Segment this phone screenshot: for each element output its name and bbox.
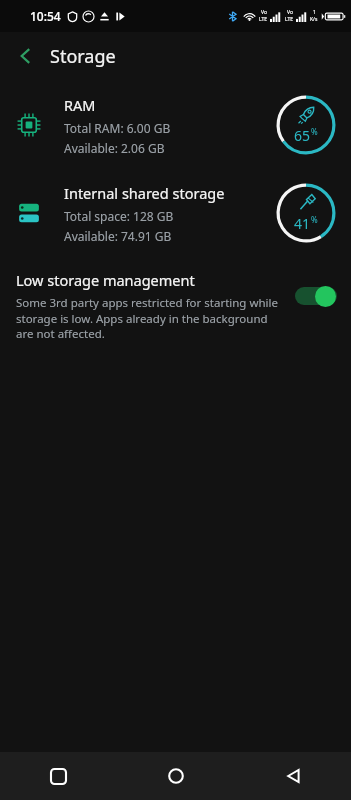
staticText: 10:54 [30, 8, 61, 24]
button[interactable]: Clean up 65 percent used [275, 94, 337, 156]
staticText: Available: 74.91 GB [64, 228, 172, 244]
button[interactable]: Back [8, 38, 44, 74]
staticText: 1 [313, 9, 316, 16]
staticText: RAM [64, 95, 96, 115]
staticText: LTE [285, 16, 294, 23]
staticText: Storage [50, 44, 116, 69]
staticText: Total RAM: 6.00 GB [64, 120, 171, 136]
staticText: 65 [294, 126, 311, 145]
staticText: Some 3rd party apps restricted for start… [16, 295, 283, 341]
button[interactable]: Recents [0, 752, 117, 800]
staticText: % [311, 214, 318, 225]
staticText: LTE [259, 16, 268, 23]
button[interactable]: Home [117, 752, 234, 800]
staticText: Low storage management [16, 270, 195, 290]
staticText: Vo [287, 9, 293, 16]
staticText: Vo [261, 9, 267, 16]
staticText: Available: 2.06 GB [64, 140, 165, 156]
button[interactable]: Low storage management [0, 266, 351, 345]
button[interactable]: Low storage management toggle [295, 284, 337, 308]
staticText: Internal shared storage [64, 183, 225, 203]
staticText: Total space: 128 GB [64, 208, 174, 224]
staticText: K/s [310, 16, 318, 23]
button[interactable]: Clean up 41 percent used [275, 182, 337, 244]
button[interactable]: RAM [0, 90, 351, 160]
button[interactable]: Internal shared storage [0, 178, 351, 248]
staticText: 41 [294, 214, 311, 233]
staticText: % [311, 126, 318, 137]
button[interactable]: Back [234, 752, 351, 800]
